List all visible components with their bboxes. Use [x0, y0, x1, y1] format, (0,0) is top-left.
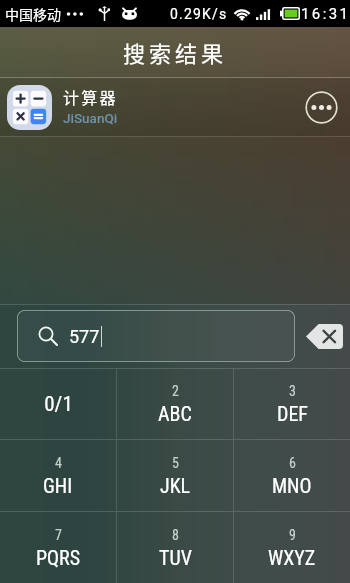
staticText: ABC [158, 402, 192, 425]
staticText: 9 [289, 527, 296, 543]
staticText: 4 [55, 455, 62, 471]
staticText: 577 [69, 326, 100, 347]
staticText: 0/1 [44, 392, 73, 417]
staticText: 0.29K/s [170, 6, 228, 22]
staticText: 3 [289, 383, 296, 399]
staticText: 16:31 [301, 5, 350, 23]
staticText: JKL [160, 474, 191, 497]
staticText: MNO [272, 474, 312, 497]
button[interactable]: 6 [234, 440, 350, 511]
button[interactable]: 3 [234, 369, 350, 439]
staticText: 中国移动 [5, 4, 61, 24]
staticText: 计算器 [63, 85, 118, 108]
staticText: 7 [55, 527, 62, 543]
button[interactable]: 8 [117, 512, 233, 583]
button[interactable]: 0/1 [0, 369, 116, 439]
staticText: WXYZ [268, 546, 316, 569]
button[interactable]: 2 [117, 369, 233, 439]
staticText: 2 [172, 383, 179, 399]
button[interactable]: 9 [234, 512, 350, 583]
staticText: PQRS [36, 546, 81, 569]
button[interactable]: 7 [0, 512, 116, 583]
button[interactable]: 577 [17, 310, 295, 362]
button[interactable]: 计算器 [0, 78, 350, 136]
staticText: GHI [43, 474, 73, 497]
staticText: DEF [277, 402, 308, 425]
button[interactable]: 4 [0, 440, 116, 511]
button[interactable]: More options [305, 91, 338, 124]
staticText: 5 [172, 455, 179, 471]
staticText: 8 [172, 527, 179, 543]
staticText: 搜索结果 [123, 36, 228, 68]
button[interactable]: 5 [117, 440, 233, 511]
staticText: JiSuanQi [63, 110, 118, 126]
button[interactable]: Backspace [306, 324, 343, 349]
staticText: 6 [289, 455, 296, 471]
staticText: TUV [159, 546, 192, 569]
